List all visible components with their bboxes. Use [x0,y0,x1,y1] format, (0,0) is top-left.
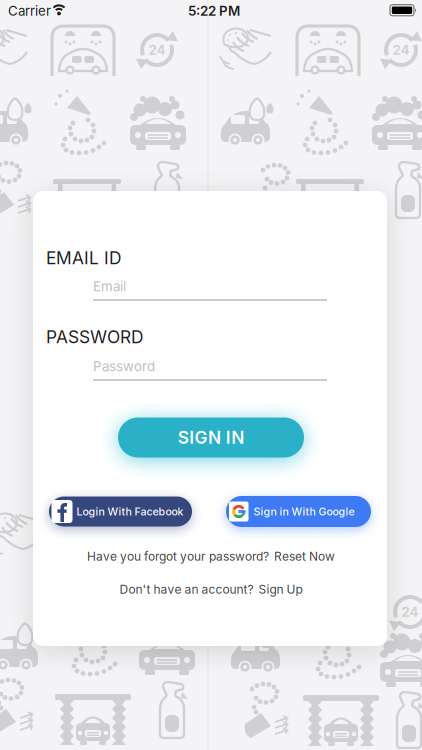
staticText: Have you forgot your password? [87,549,269,564]
button[interactable]: Email [93,276,327,300]
button[interactable]: Password [93,356,327,380]
staticText: Sign in With Google [253,505,354,518]
staticText: Login With Facebook [76,505,183,518]
button[interactable]: SIGN IN [118,417,304,457]
staticText: Sign Up [258,582,302,597]
staticText: 24 [392,42,409,58]
staticText: EMAIL ID [46,248,122,268]
button[interactable]: Login With Facebook [49,496,192,526]
staticText: 24 [401,604,418,620]
staticText: 24 [148,42,165,58]
staticText: Carrier [8,3,51,19]
staticText: PASSWORD [46,327,144,347]
button[interactable]: Sign in With Google [226,496,371,527]
staticText: SIGN IN [178,427,244,448]
staticText: Reset Now [274,549,335,564]
button[interactable]: Sign Up [258,582,302,597]
staticText: Don't have an account? [119,582,253,597]
staticText: Password [93,359,155,374]
staticText: Email [93,279,126,294]
staticText: 5:22 PM [188,3,240,19]
button[interactable]: Reset Now [274,549,335,564]
